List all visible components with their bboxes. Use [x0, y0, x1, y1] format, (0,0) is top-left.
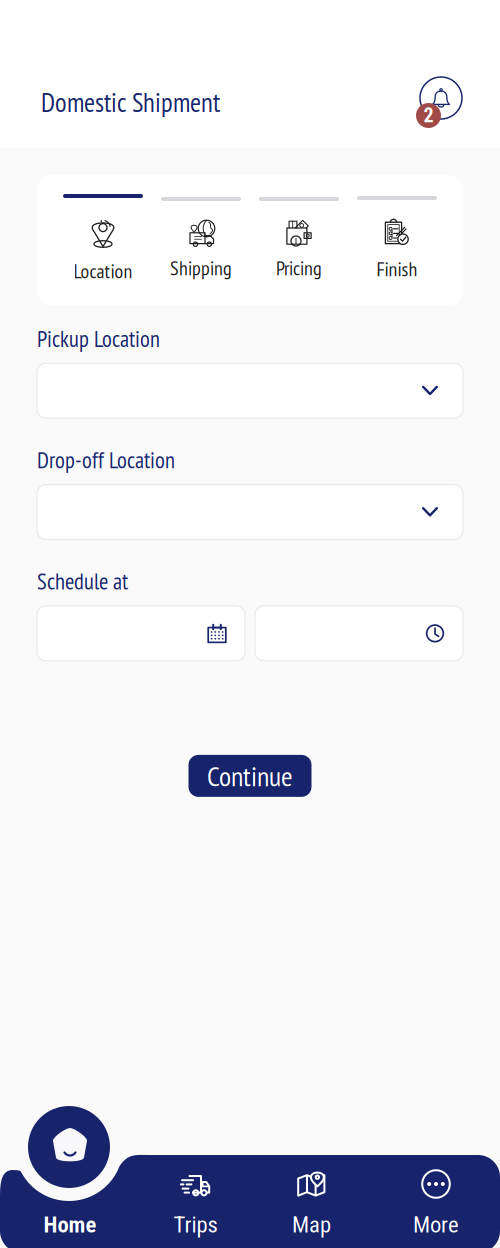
button[interactable]: Choose time: [255, 606, 463, 661]
button[interactable]: Map: [251, 1095, 372, 1248]
staticText: Pricing: [276, 255, 322, 281]
staticText: Finish: [376, 256, 417, 282]
button[interactable]: More: [372, 1095, 500, 1248]
button[interactable]: Choose date: [37, 606, 245, 661]
button[interactable]: Trips: [140, 1095, 251, 1248]
button[interactable]: Drop-off Location: [37, 484, 463, 539]
staticText: Domestic Shipment: [41, 85, 220, 119]
staticText: Map: [292, 1211, 331, 1238]
staticText: Home: [43, 1211, 96, 1238]
button[interactable]: Continue: [188, 755, 311, 797]
staticText: Pickup Location: [37, 324, 160, 353]
staticText: Continue: [207, 758, 293, 794]
staticText: Drop-off Location: [37, 445, 175, 474]
staticText: Schedule at: [37, 566, 128, 596]
button[interactable]: Home: [0, 1095, 140, 1248]
staticText: More: [413, 1211, 459, 1238]
staticText: Trips: [173, 1211, 217, 1238]
staticText: Shipping: [170, 255, 232, 281]
button[interactable]: Pickup Location: [37, 363, 463, 418]
staticText: Location: [73, 258, 132, 284]
button[interactable]: Notifications: [419, 76, 463, 128]
staticText: 2: [423, 104, 433, 127]
